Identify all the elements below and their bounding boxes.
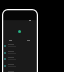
button[interactable] xyxy=(4,62,37,69)
button[interactable] xyxy=(4,42,37,49)
other: App logo xyxy=(18,30,21,33)
button[interactable] xyxy=(4,69,37,72)
button[interactable] xyxy=(4,55,37,62)
button[interactable] xyxy=(4,49,37,56)
